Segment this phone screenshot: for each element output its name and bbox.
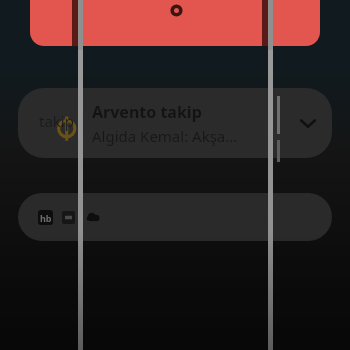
staticText: Arvento takip xyxy=(92,101,202,123)
staticText: Algida Kemal: Akşa... xyxy=(92,126,238,146)
staticText: takip xyxy=(39,111,74,131)
button[interactable]: takip xyxy=(18,88,332,158)
button[interactable] xyxy=(30,0,320,46)
button[interactable]: Expand notification xyxy=(286,101,330,145)
staticText: hb xyxy=(40,212,52,224)
button[interactable]: hb xyxy=(18,193,332,241)
